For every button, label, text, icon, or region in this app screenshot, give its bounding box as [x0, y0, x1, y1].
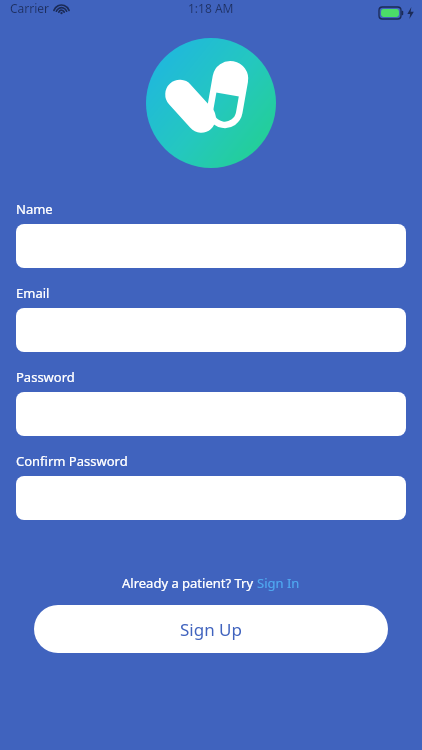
staticText: Carrier [10, 0, 50, 16]
button[interactable]: Sign In [257, 574, 300, 592]
staticText: Already a patient? Try [122, 574, 257, 592]
button[interactable]: Password [16, 392, 406, 436]
staticText: Name [16, 200, 53, 218]
button[interactable]: Sign Up [34, 605, 388, 653]
staticText: Confirm Password [16, 452, 128, 470]
staticText: 1:18 AM [188, 0, 234, 16]
staticText: Password [16, 368, 75, 386]
staticText: Sign In [257, 574, 300, 592]
button[interactable]: Name [16, 224, 406, 268]
staticText: Email [16, 284, 50, 302]
button[interactable]: Confirm Password [16, 476, 406, 520]
button[interactable]: Email [16, 308, 406, 352]
staticText: Sign Up [180, 618, 242, 641]
